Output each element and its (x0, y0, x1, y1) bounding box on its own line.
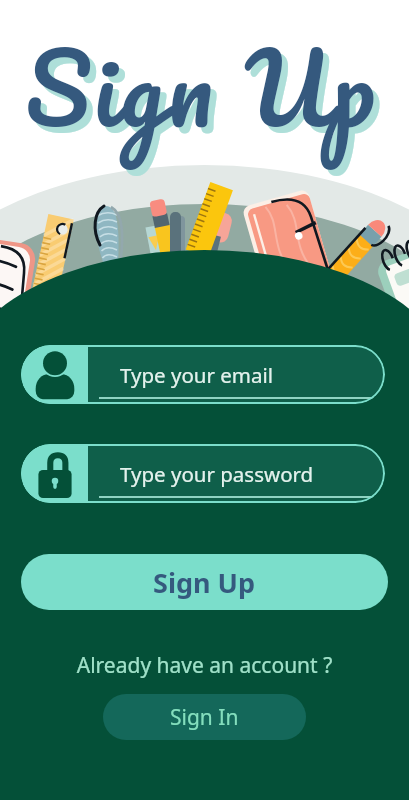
button[interactable]: Type your email (21, 345, 385, 404)
button[interactable]: Type your password (21, 444, 385, 503)
staticText: Sign Up (31, 11, 385, 176)
staticText: Type your email (120, 361, 274, 389)
staticText: Sign In (170, 703, 239, 732)
staticText: Type your password (120, 460, 314, 488)
button[interactable]: Sign In (103, 694, 306, 740)
staticText: Already have an account ? (0, 651, 409, 680)
button[interactable]: Sign Up (21, 554, 388, 610)
staticText: Sign Up (25, 5, 379, 170)
staticText: Sign Up (153, 564, 256, 601)
